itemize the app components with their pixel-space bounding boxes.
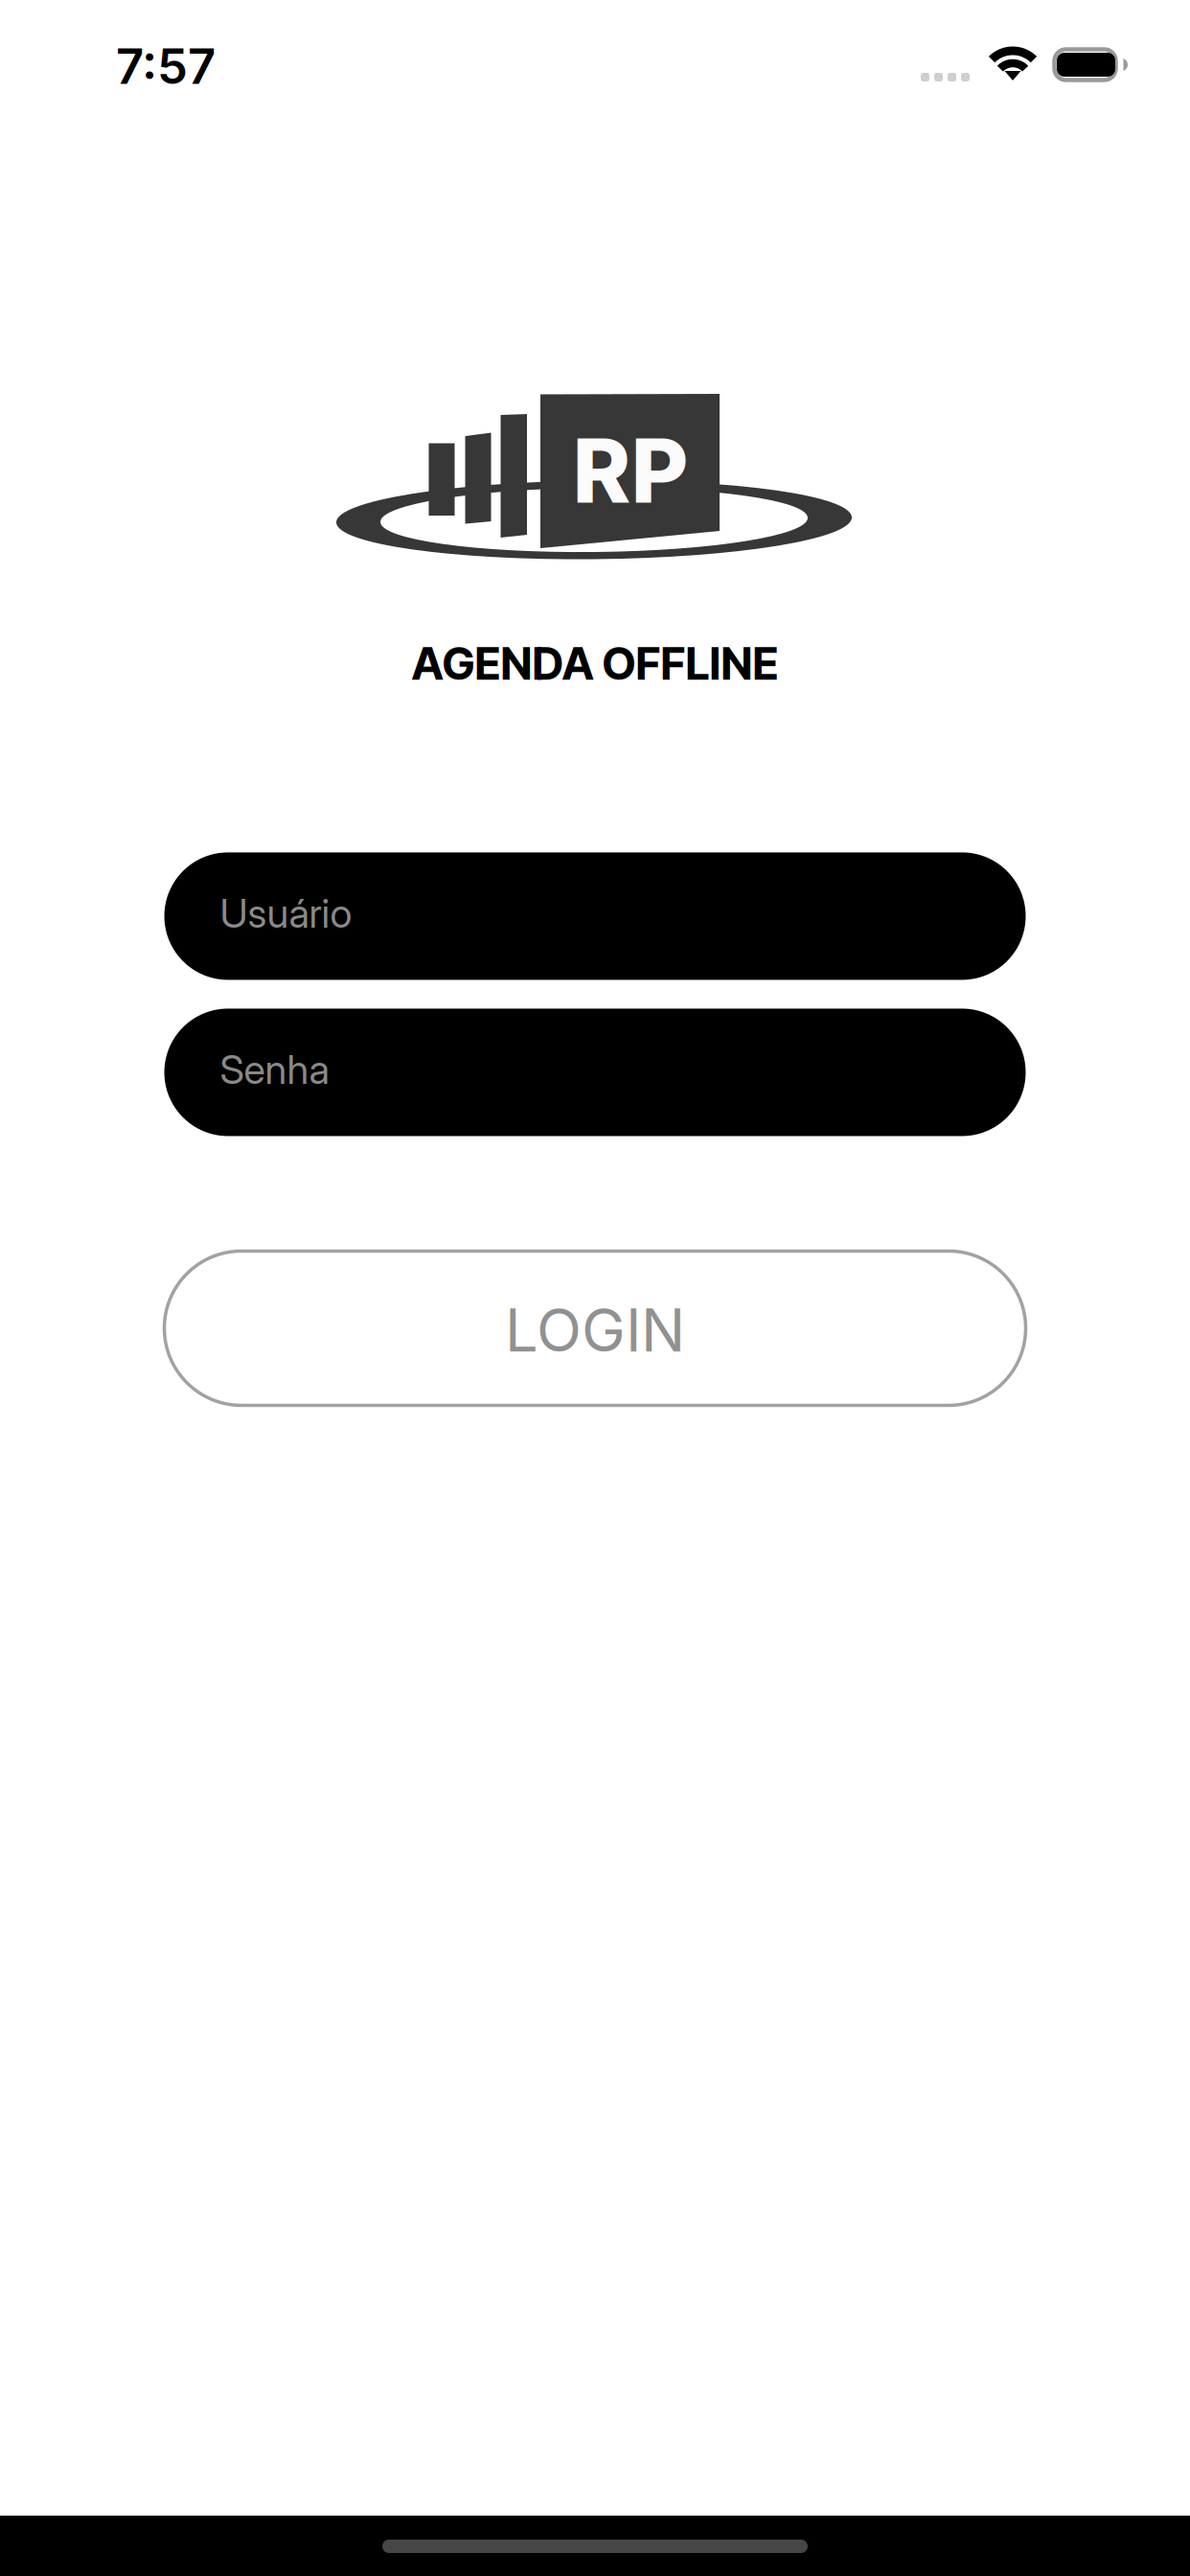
staticText: Senha <box>220 1046 329 1093</box>
staticText: Usuário <box>220 889 352 937</box>
button[interactable]: LOGIN <box>164 1251 1026 1405</box>
button[interactable]: Senha <box>164 1009 1026 1136</box>
staticText: RP <box>572 417 688 524</box>
staticText: LOGIN <box>505 1295 685 1366</box>
staticText: 7:57 <box>116 37 216 95</box>
staticText: AGENDA OFFLINE <box>412 636 778 690</box>
button[interactable]: Usuário <box>164 852 1026 980</box>
